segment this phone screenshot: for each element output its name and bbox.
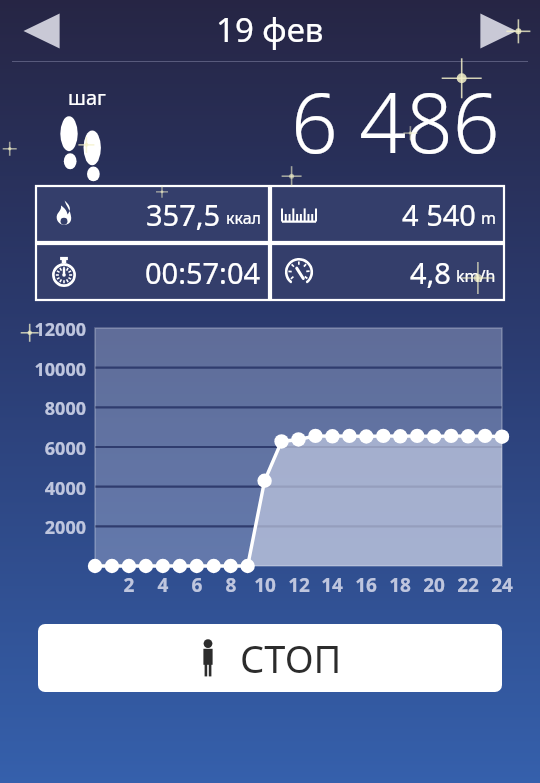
staticText: 6000 [0, 436, 86, 461]
staticText: шаг [68, 84, 106, 111]
staticText: 00:57:04 [145, 253, 261, 292]
staticText: 4,8 [410, 253, 451, 292]
staticText: 12 [283, 572, 315, 598]
staticText: 8 [215, 572, 247, 598]
staticText: 2 [113, 572, 145, 598]
staticText: 19 фев [216, 7, 324, 52]
staticText: 24 [486, 572, 518, 598]
staticText: 10000 [0, 357, 86, 382]
button[interactable]: 00:57:04 [36, 244, 269, 300]
button[interactable]: СТОП [38, 624, 502, 692]
staticText: 2000 [0, 515, 86, 540]
staticText: 4000 [0, 476, 86, 501]
staticText: ккал [226, 207, 261, 229]
button[interactable]: 357,5 [36, 186, 269, 242]
staticText: 10 [249, 572, 281, 598]
staticText: СТОП [240, 632, 342, 684]
staticText: 8000 [0, 396, 86, 421]
button[interactable]: 4 540 [271, 186, 504, 242]
staticText: 16 [350, 572, 382, 598]
staticText: 6 [181, 572, 213, 598]
button[interactable]: Previous day [14, 7, 70, 55]
staticText: 22 [452, 572, 484, 598]
staticText: 18 [384, 572, 416, 598]
button[interactable]: 4,8 [271, 244, 504, 300]
staticText: 4 540 [402, 195, 476, 234]
staticText: 357,5 [146, 195, 221, 234]
staticText: 14 [316, 572, 348, 598]
staticText: km/h [456, 265, 496, 287]
button[interactable]: Next day [470, 7, 526, 55]
staticText: m [481, 207, 496, 229]
staticText: 6 486 [291, 65, 500, 177]
staticText: 4 [147, 572, 179, 598]
staticText: 20 [418, 572, 450, 598]
staticText: 12000 [0, 317, 86, 342]
